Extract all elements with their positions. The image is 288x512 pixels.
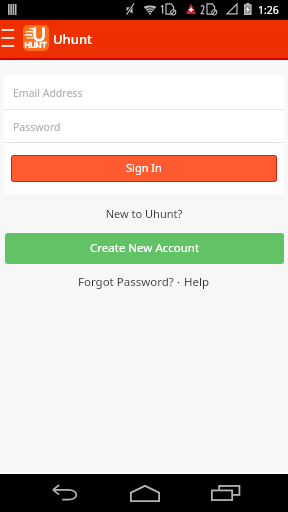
staticText: Email Address (13, 86, 83, 100)
button[interactable] (22, 20, 94, 58)
button[interactable]: Password (4, 110, 284, 142)
button[interactable]: Recent apps (203, 474, 248, 512)
staticText: Uhunt (53, 30, 93, 48)
button[interactable]: Home (122, 474, 167, 512)
button[interactable]: Help (184, 274, 210, 290)
button[interactable]: Back (42, 474, 87, 512)
staticText: New to Uhunt? (0, 206, 288, 221)
staticText: Create New Account (90, 240, 200, 256)
button[interactable]: Sign In (12, 156, 276, 181)
button[interactable]: Forgot Password? (78, 274, 174, 290)
staticText: 1:26 (258, 3, 279, 17)
staticText: Password (13, 120, 61, 134)
button[interactable]: Email Address (4, 75, 284, 109)
staticText: · (174, 274, 184, 290)
staticText: Sign In (126, 160, 162, 175)
button[interactable]: Open navigation menu (0, 20, 22, 58)
button[interactable]: Create New Account (5, 233, 284, 264)
